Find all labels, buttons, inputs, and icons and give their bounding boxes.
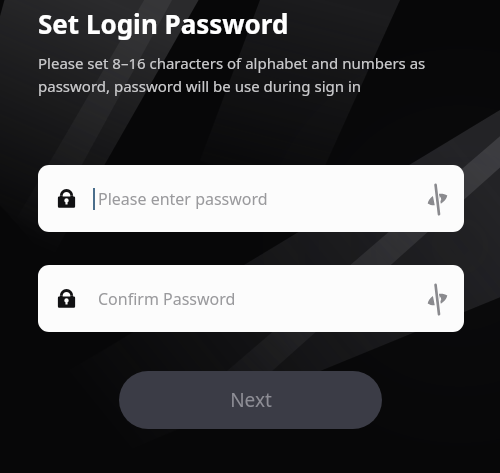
staticText: Please set 8–16 characters of alphabet a… — [38, 53, 472, 96]
other: Password — [56, 288, 77, 309]
button[interactable]: Show password — [414, 176, 460, 222]
staticText: Confirm Password — [98, 288, 414, 310]
other: Password — [56, 188, 77, 209]
button[interactable]: Password — [38, 265, 464, 332]
button[interactable]: Password — [38, 165, 464, 232]
staticText: Next — [230, 387, 272, 413]
button[interactable]: Next — [119, 371, 382, 429]
staticText: Please enter password — [98, 188, 414, 210]
staticText: Set Login Password — [38, 6, 289, 41]
button[interactable]: Show password — [414, 276, 460, 322]
